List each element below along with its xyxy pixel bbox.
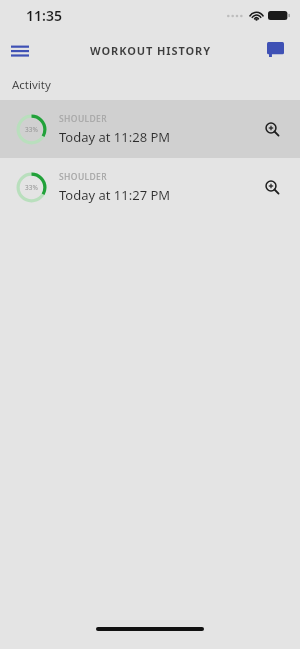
button[interactable]: 33%	[0, 100, 300, 158]
staticText: SHOULDER	[59, 113, 108, 125]
button[interactable]: 33%	[0, 158, 300, 216]
staticText: Today at 11:27 PM	[59, 186, 171, 204]
button[interactable]: View workout details	[250, 165, 294, 209]
staticText: WORKOUT HISTORY	[90, 43, 211, 58]
button[interactable]: Open navigation menu	[0, 30, 40, 70]
staticText: 33%	[25, 125, 38, 134]
staticText: Today at 11:28 PM	[59, 128, 171, 146]
staticText: 33%	[25, 183, 38, 192]
button[interactable]: Messages	[256, 31, 294, 69]
button[interactable]: View workout details	[250, 107, 294, 151]
staticText: SHOULDER	[59, 171, 108, 183]
staticText: Activity	[12, 77, 51, 93]
staticText: 11:35	[26, 6, 62, 25]
